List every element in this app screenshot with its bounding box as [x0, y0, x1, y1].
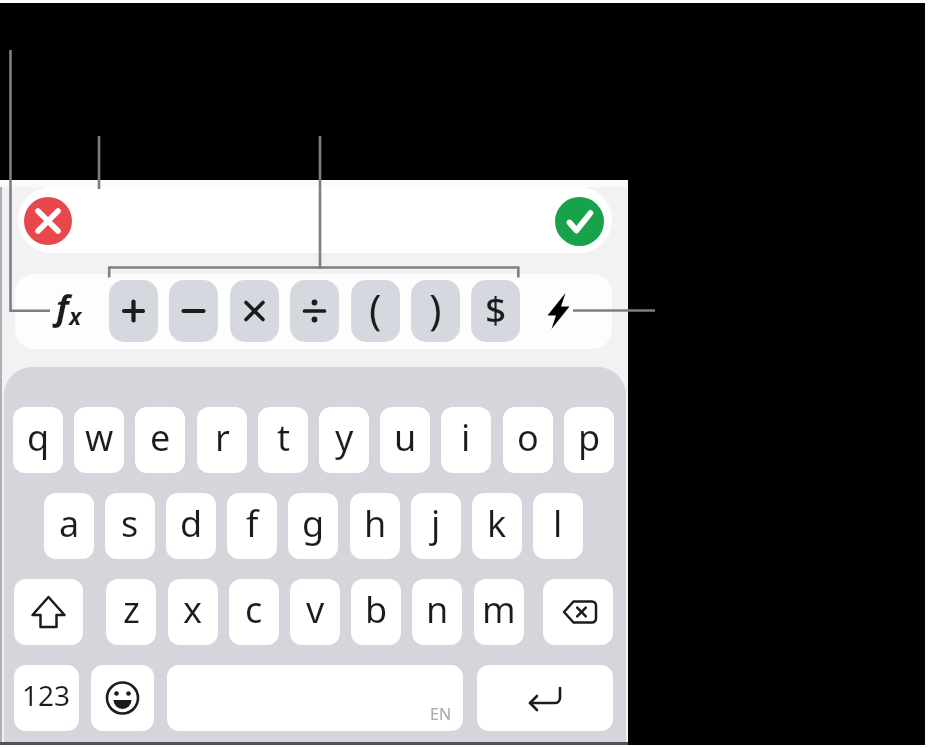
button[interactable]: j: [411, 493, 461, 559]
button[interactable]: x: [168, 579, 218, 645]
staticText: t: [277, 413, 290, 462]
staticText: n: [426, 585, 449, 634]
staticText: EN: [430, 703, 452, 725]
staticText: f: [246, 499, 259, 548]
button[interactable]: m: [474, 579, 524, 645]
button[interactable]: [290, 280, 339, 342]
staticText: g: [302, 499, 325, 548]
staticText: m: [482, 585, 516, 634]
button[interactable]: y: [319, 407, 369, 473]
button[interactable]: (: [351, 280, 400, 342]
button[interactable]: q: [13, 407, 63, 473]
staticText: q: [27, 413, 50, 462]
button[interactable]: [109, 280, 158, 342]
button[interactable]: a: [44, 493, 94, 559]
button[interactable]: [555, 197, 604, 246]
button[interactable]: f: [47, 280, 91, 334]
button[interactable]: g: [288, 493, 338, 559]
staticText: (: [369, 280, 382, 337]
button[interactable]: z: [106, 579, 156, 645]
button[interactable]: n: [412, 579, 462, 645]
button[interactable]: [167, 665, 463, 731]
button[interactable]: o: [503, 407, 553, 473]
button[interactable]: [91, 665, 154, 731]
staticText: w: [85, 413, 114, 462]
button[interactable]: [230, 280, 279, 342]
button[interactable]: i: [441, 407, 491, 473]
staticText: b: [365, 585, 388, 634]
button[interactable]: e: [135, 407, 185, 473]
button[interactable]: [543, 579, 613, 645]
staticText: f: [56, 284, 69, 330]
button[interactable]: h: [350, 493, 400, 559]
button[interactable]: p: [564, 407, 614, 473]
staticText: j: [431, 499, 441, 548]
staticText: d: [180, 499, 203, 548]
button[interactable]: [24, 197, 72, 245]
button[interactable]: ): [411, 280, 460, 342]
staticText: z: [123, 585, 140, 634]
button[interactable]: r: [197, 407, 247, 473]
staticText: 123: [22, 676, 71, 714]
staticText: u: [394, 413, 417, 462]
button[interactable]: s: [105, 493, 155, 559]
staticText: i: [461, 413, 471, 462]
button[interactable]: k: [472, 493, 522, 559]
button[interactable]: c: [229, 579, 279, 645]
button[interactable]: d: [166, 493, 216, 559]
button[interactable]: u: [380, 407, 430, 473]
button[interactable]: [477, 665, 613, 731]
button[interactable]: b: [351, 579, 401, 645]
staticText: p: [578, 413, 601, 462]
staticText: h: [364, 499, 387, 548]
staticText: s: [121, 499, 139, 548]
staticText: x: [69, 300, 82, 331]
button[interactable]: [14, 579, 83, 645]
button[interactable]: l: [533, 493, 583, 559]
staticText: e: [150, 413, 171, 462]
staticText: v: [306, 585, 325, 634]
staticText: c: [245, 585, 263, 634]
staticText: o: [517, 413, 539, 462]
button[interactable]: v: [290, 579, 340, 645]
staticText: $: [485, 283, 507, 333]
button[interactable]: f: [227, 493, 277, 559]
button[interactable]: $: [471, 280, 520, 342]
button[interactable]: w: [74, 407, 124, 473]
staticText: l: [553, 499, 563, 548]
button[interactable]: t: [258, 407, 308, 473]
staticText: ): [429, 280, 442, 337]
staticText: r: [215, 413, 230, 462]
staticText: y: [335, 413, 354, 462]
staticText: x: [183, 585, 203, 634]
staticText: a: [59, 499, 80, 548]
button[interactable]: [538, 286, 578, 336]
button[interactable]: [169, 280, 218, 342]
button[interactable]: 123: [14, 665, 79, 731]
staticText: k: [487, 499, 507, 548]
